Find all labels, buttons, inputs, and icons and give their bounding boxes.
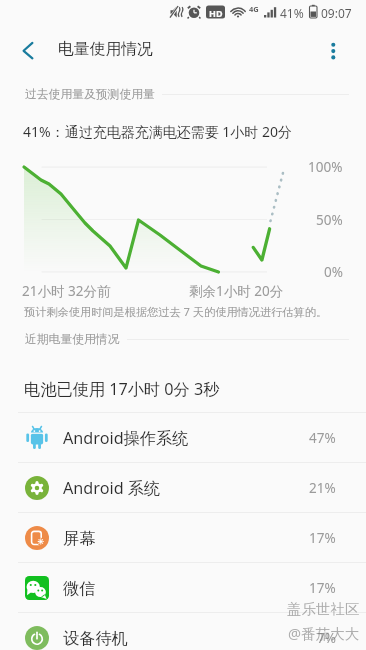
staticText: Android 系统 — [63, 477, 161, 499]
button[interactable]: 微信 — [0, 563, 366, 612]
staticText: 剩余1小时 20分 — [189, 282, 284, 300]
staticText: 21% — [309, 479, 336, 497]
button[interactable]: 设备待机 — [0, 613, 366, 650]
staticText: 47% — [309, 429, 336, 447]
staticText: 41% — [280, 5, 304, 21]
staticText: 盖乐世社区 — [287, 600, 360, 618]
button[interactable]: More options — [313, 30, 353, 70]
staticText: 17% — [309, 579, 336, 597]
staticText: 过去使用量及预测使用量 — [25, 87, 155, 102]
staticText: Android操作系统 — [63, 427, 189, 449]
button[interactable]: 屏幕 — [0, 513, 366, 562]
staticText: 17% — [309, 529, 336, 547]
button[interactable]: Android操作系统 — [0, 413, 366, 462]
staticText: 4G — [249, 4, 259, 14]
button[interactable]: Android 系统 — [0, 463, 366, 512]
staticText: 09:07 — [321, 5, 352, 21]
staticText: 预计剩余使用时间是根据您过去 7 天的使用情况进行估算的。 — [24, 304, 328, 319]
staticText: 50% — [316, 211, 343, 229]
staticText: HD — [209, 7, 223, 19]
staticText: 100% — [308, 158, 343, 176]
staticText: 7% — [317, 629, 336, 647]
staticText: 微信 — [63, 578, 96, 598]
staticText: 近期电量使用情况 — [25, 332, 120, 347]
staticText: 0% — [324, 263, 343, 281]
staticText: 电量使用情况 — [58, 39, 153, 59]
staticText: 屏幕 — [63, 528, 96, 548]
staticText: 41%：通过充电器充满电还需要 1小时 20分 — [23, 122, 292, 141]
button[interactable]: Back — [8, 30, 48, 70]
staticText: 设备待机 — [63, 628, 128, 648]
staticText: 21小时 32分前 — [22, 282, 111, 300]
staticText: 电池已使用 17小时 0分 3秒 — [24, 378, 220, 400]
staticText: @番茄大大 — [288, 623, 360, 643]
